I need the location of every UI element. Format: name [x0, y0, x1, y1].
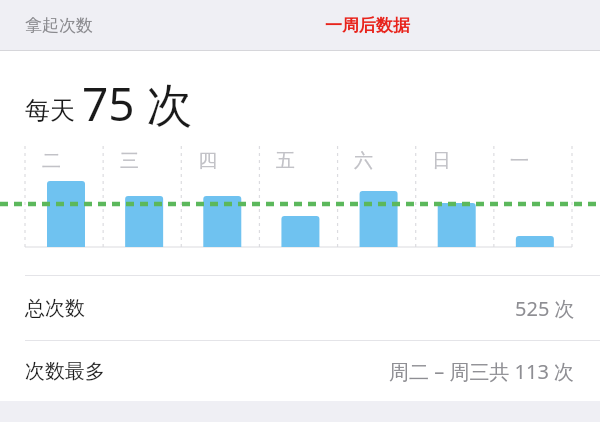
staticText: 六 — [354, 149, 373, 173]
staticText: 四 — [198, 149, 217, 173]
staticText: 次数最多 — [25, 359, 105, 384]
button[interactable]: 总次数 — [0, 276, 600, 340]
staticText: 拿起次数 — [25, 15, 93, 36]
staticText: 三 — [120, 149, 139, 173]
button[interactable]: 拿起次数 — [0, 0, 600, 50]
staticText: 一 — [510, 149, 529, 173]
staticText: 75 次 — [82, 72, 193, 135]
staticText: 二 — [42, 149, 61, 173]
staticText: 日 — [432, 149, 451, 173]
staticText: 周二 – 周三共 113 次 — [389, 358, 575, 385]
staticText: 五 — [276, 149, 295, 173]
button[interactable]: 次数最多 — [0, 341, 600, 401]
staticText: 525 次 — [515, 295, 575, 322]
staticText: 每天 — [25, 95, 75, 126]
staticText: 一周后数据 — [325, 15, 410, 36]
staticText: 总次数 — [25, 296, 85, 321]
